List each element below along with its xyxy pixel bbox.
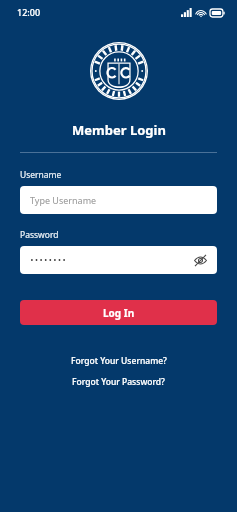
staticText: Forgot Your Password?	[72, 376, 165, 388]
button[interactable]: Type Username	[20, 186, 217, 214]
staticText: 12:00	[17, 6, 41, 18]
button[interactable]: Forgot Your Password?	[64, 374, 173, 390]
staticText: Forgot Your Username?	[71, 355, 167, 367]
staticText: Password	[20, 229, 59, 241]
button[interactable]: Show password	[191, 251, 209, 269]
button[interactable]: Show password	[20, 246, 217, 274]
button[interactable]: Forgot Your Username?	[63, 353, 175, 369]
staticText: Member Login	[72, 121, 166, 139]
staticText: Type Username	[30, 194, 97, 206]
staticText: Username	[20, 169, 62, 181]
button[interactable]: Log In	[20, 300, 217, 325]
staticText: Log In	[103, 306, 135, 320]
